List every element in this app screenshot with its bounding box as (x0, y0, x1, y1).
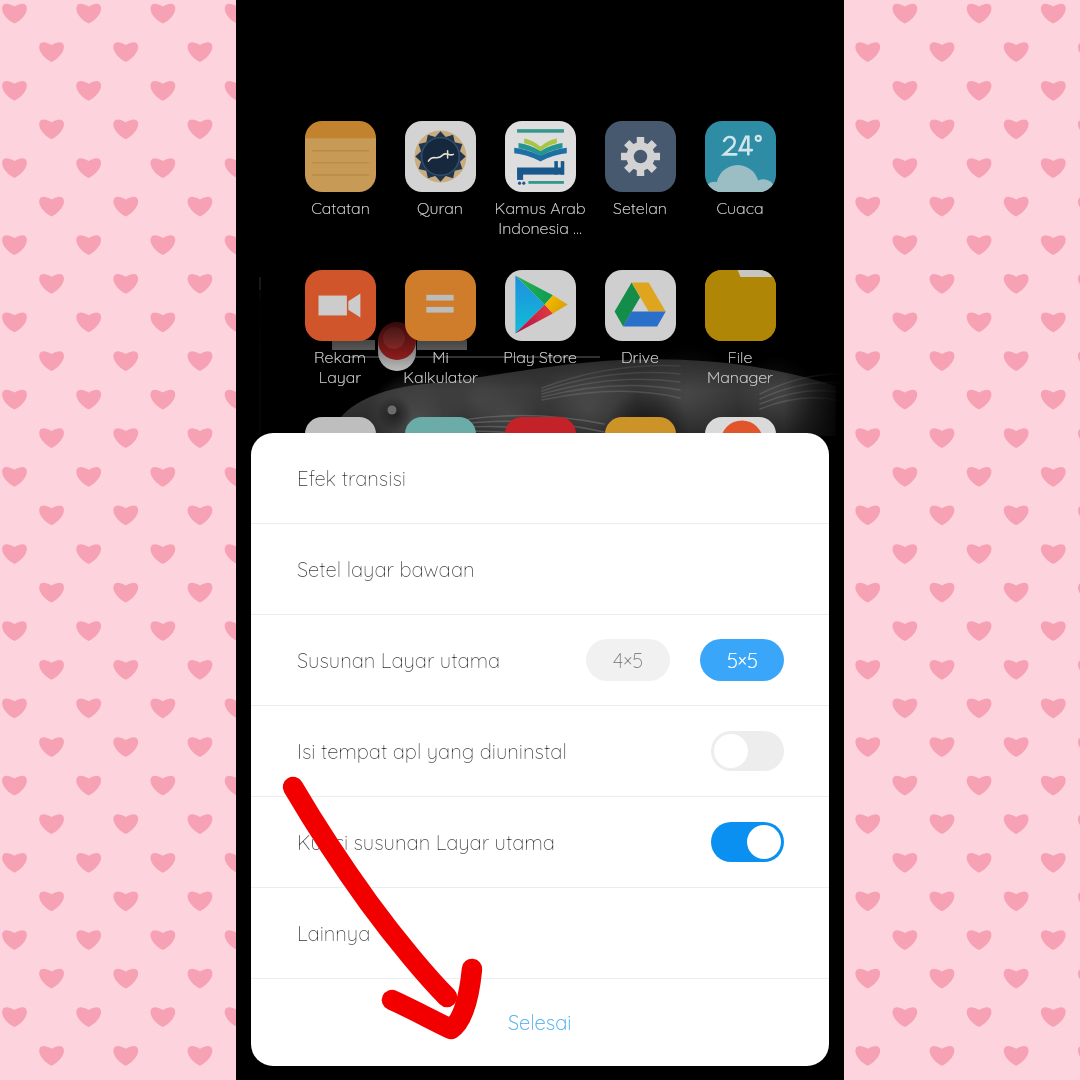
button[interactable]: Kunci susunan Layar utama (251, 797, 829, 887)
button[interactable]: Quran (390, 121, 490, 218)
button[interactable]: Switch on (711, 822, 784, 862)
staticText: Efek transisi (297, 466, 406, 491)
button[interactable]: Isi tempat apl yang diuninstal (251, 706, 829, 796)
button[interactable]: Susunan Layar utama (251, 615, 829, 705)
button[interactable]: Efek transisi (251, 433, 829, 523)
button[interactable]: Cuaca (690, 121, 790, 218)
staticText: Mi Kalkulator (403, 347, 478, 387)
staticText: Selesai (508, 1010, 572, 1035)
staticText: Quran (417, 198, 463, 218)
staticText: Cuaca (716, 198, 764, 218)
staticText: File Manager (707, 347, 773, 387)
staticText: Susunan Layar utama (297, 648, 501, 673)
staticText: Play Store (503, 347, 577, 367)
button[interactable]: Lainnya (251, 888, 829, 978)
staticText: Lainnya (297, 921, 371, 946)
button[interactable]: Rekam Layar (290, 270, 390, 387)
button[interactable]: Kamus Arab Indonesia … (490, 121, 590, 238)
staticText: Setel layar bawaan (297, 557, 475, 582)
button[interactable]: Setel layar bawaan (251, 524, 829, 614)
button[interactable]: Mi Kalkulator (390, 270, 490, 387)
button[interactable]: Switch off (711, 731, 784, 771)
staticText: Rekam Layar (314, 347, 366, 387)
button[interactable]: Drive (590, 270, 690, 367)
staticText: Drive (621, 347, 659, 367)
button[interactable]: Catatan (290, 121, 390, 218)
staticText: 5×5 (727, 648, 758, 673)
staticText: Setelan (613, 198, 667, 218)
button[interactable]: 5×5 (700, 639, 784, 681)
staticText: Isi tempat apl yang diuninstal (297, 739, 567, 764)
staticText: Catatan (311, 198, 370, 218)
button[interactable]: Play Store (490, 270, 590, 367)
staticText: Kunci susunan Layar utama (297, 830, 555, 855)
button[interactable]: Setelan (590, 121, 690, 218)
button[interactable]: File Manager (690, 270, 790, 387)
staticText: 4×5 (613, 648, 644, 673)
staticText: Kamus Arab Indonesia … (494, 198, 586, 238)
button[interactable]: 4×5 (586, 639, 670, 681)
button[interactable]: Selesai (251, 979, 829, 1066)
